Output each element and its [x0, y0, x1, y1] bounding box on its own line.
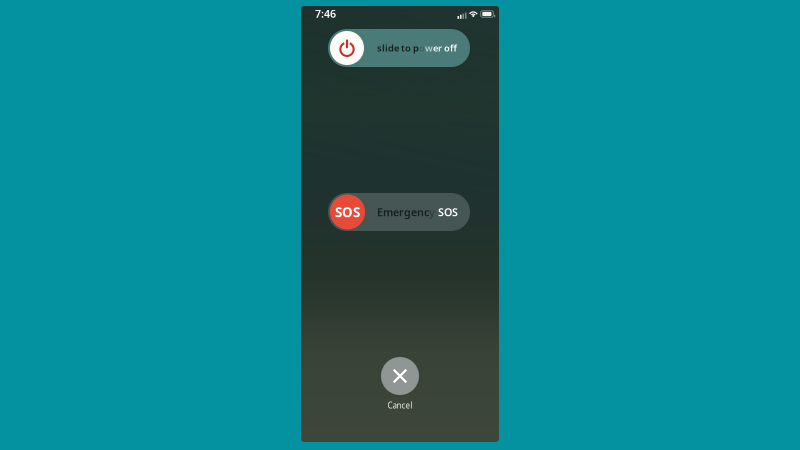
button[interactable]: Emergenc: [328, 193, 470, 231]
staticText: er: [433, 42, 444, 54]
staticText: Cancel: [387, 400, 412, 411]
staticText: o: [419, 42, 425, 54]
staticText: y: [429, 205, 435, 219]
staticText: SOS: [335, 203, 360, 221]
button[interactable]: Cancel: [372, 357, 428, 411]
staticText: SOS: [438, 205, 458, 219]
staticText: w: [425, 42, 433, 54]
staticText: Emergenc: [377, 205, 429, 219]
staticText: 7:46: [315, 6, 336, 21]
staticText: off: [444, 42, 457, 54]
button[interactable]: slide to p: [328, 29, 470, 67]
staticText: slide to p: [377, 42, 419, 54]
